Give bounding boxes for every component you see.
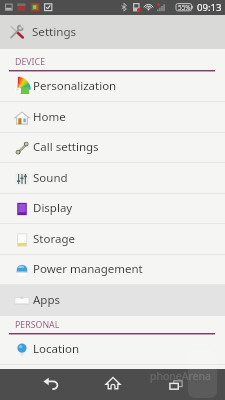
staticText: phoneArena (150, 369, 211, 383)
staticText: 55% (178, 3, 191, 12)
button[interactable]: Home (92, 369, 133, 400)
staticText: Settings (32, 24, 77, 40)
button[interactable]: Apps (0, 285, 225, 316)
button[interactable]: Back (30, 369, 71, 400)
button[interactable]: Home (0, 102, 225, 133)
staticText: Sound (33, 170, 68, 186)
button[interactable]: Sound (0, 163, 225, 194)
staticText: Personalization (33, 78, 117, 94)
staticText: 09:13 (197, 1, 222, 14)
button[interactable]: Power management (0, 255, 225, 285)
button[interactable]: Call settings (0, 133, 225, 163)
staticText: Call settings (33, 139, 99, 155)
staticText: PERSONAL (15, 319, 60, 331)
staticText: Power management (33, 261, 143, 277)
staticText: Home (33, 109, 66, 125)
staticText: Apps (33, 292, 61, 308)
staticText: Display (33, 200, 73, 216)
button[interactable]: Display (0, 194, 225, 224)
staticText: DEVICE (15, 56, 46, 68)
button[interactable]: Storage (0, 224, 225, 255)
staticText: Storage (33, 231, 75, 247)
button[interactable]: Personalization (0, 72, 225, 102)
button[interactable]: Location (0, 335, 225, 365)
button[interactable]: Recent apps (155, 369, 196, 400)
staticText: Location (33, 341, 80, 357)
